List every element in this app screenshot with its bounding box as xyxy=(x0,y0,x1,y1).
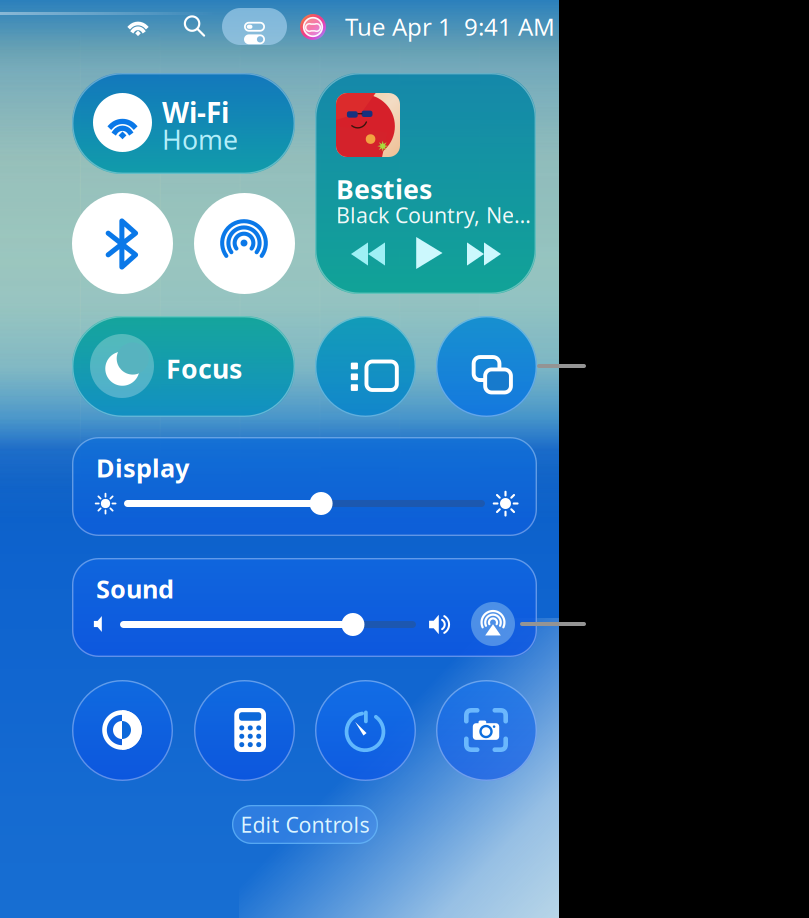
staticText: Tue Apr 1 9:41 AM xyxy=(345,10,555,42)
button[interactable]: Search xyxy=(0,0,24,24)
button[interactable]: Bluetooth xyxy=(0,0,101,101)
staticText: Edit Controls xyxy=(240,810,369,839)
button[interactable]: Timer xyxy=(0,0,101,101)
staticText: Wi-Fi xyxy=(162,94,229,131)
button[interactable]: Dark Mode xyxy=(0,0,101,101)
button[interactable]: Calculator xyxy=(0,0,101,101)
staticText: Besties xyxy=(336,171,432,207)
button[interactable]: AirPlay Audio xyxy=(471,602,515,646)
button[interactable]: Siri xyxy=(0,0,26,26)
staticText: Black Country, New… xyxy=(336,201,536,229)
staticText: Display xyxy=(96,451,189,485)
staticText: Home xyxy=(162,122,238,157)
button[interactable]: Stage Manager xyxy=(0,0,101,101)
button[interactable]: Edit Controls xyxy=(0,0,146,39)
button[interactable]: Focus xyxy=(0,0,223,101)
button[interactable]: AirDrop xyxy=(0,0,101,101)
staticText: Sound xyxy=(96,572,174,606)
staticText: Focus xyxy=(166,351,242,386)
button[interactable]: Screen Mirroring xyxy=(0,0,101,101)
button[interactable]: Control Center xyxy=(0,0,65,37)
button[interactable]: Screenshot xyxy=(0,0,101,101)
button[interactable]: Wi-Fi xyxy=(0,0,223,101)
button[interactable]: Besties xyxy=(0,0,221,221)
